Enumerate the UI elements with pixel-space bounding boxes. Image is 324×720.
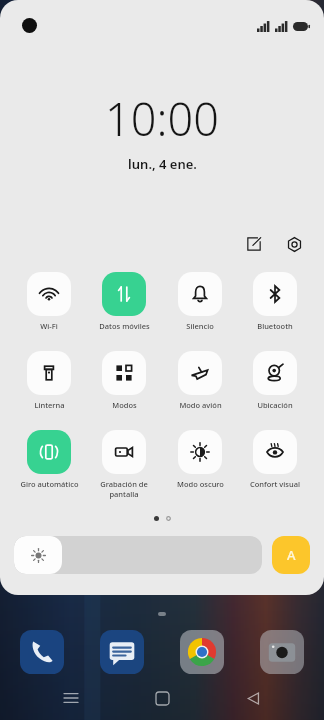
button[interactable]: Home [142,678,182,718]
staticText: Modo oscuro [177,479,224,489]
button[interactable]: A [272,536,310,574]
staticText: Giro automático [20,479,79,489]
button[interactable]: Modo avión [167,351,233,410]
staticText: Confort visual [250,479,300,489]
button[interactable]: Giro automático [16,430,82,489]
staticText: Datos móviles [99,321,150,331]
button[interactable]: Brightness [14,536,262,574]
button[interactable]: Phone [20,630,64,674]
staticText: Ubicación [257,400,293,410]
staticText: lun., 4 ene. [128,155,197,173]
staticText: Wi-Fi [40,321,58,331]
staticText: A [287,546,296,564]
button[interactable]: Silencio [167,272,233,331]
button[interactable]: Ubicación [242,351,308,410]
staticText: Grabación de pantalla [91,479,157,499]
button[interactable]: Recents [51,678,91,718]
button[interactable]: Grabación de pantalla [91,430,157,499]
staticText: 10:00 [105,88,219,149]
button[interactable]: Back [233,678,273,718]
button[interactable]: Modos [91,351,157,410]
button[interactable]: Confort visual [242,430,308,489]
button[interactable]: Linterna [16,351,82,410]
staticText: Linterna [34,400,65,410]
button[interactable]: Bluetooth [242,272,308,331]
button[interactable]: Settings [282,232,306,256]
button[interactable]: Modo oscuro [167,430,233,489]
staticText: Silencio [186,321,214,331]
staticText: Modo avión [179,400,222,410]
button[interactable]: Chrome [180,630,224,674]
button[interactable]: Datos móviles [91,272,157,331]
staticText: Bluetooth [257,321,293,331]
button[interactable]: Edit [242,232,266,256]
button[interactable]: Messages [100,630,144,674]
staticText: Modos [112,400,137,410]
button[interactable]: Wi-Fi [16,272,82,331]
button[interactable]: Camera [260,630,304,674]
